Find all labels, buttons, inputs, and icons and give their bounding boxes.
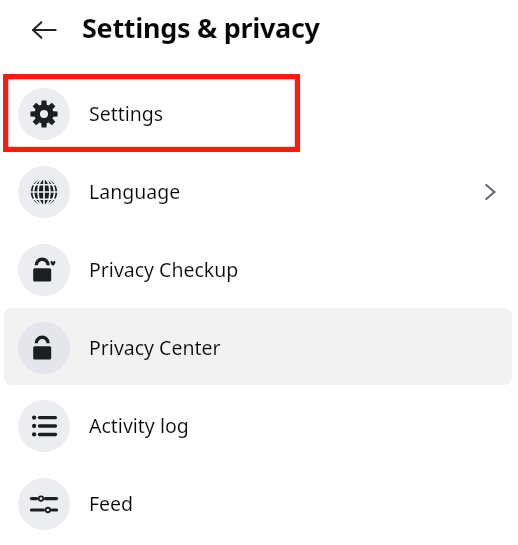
staticText: Language — [89, 178, 181, 205]
button[interactable]: Language — [0, 153, 518, 230]
button[interactable]: Privacy Center — [0, 309, 518, 386]
button[interactable]: Activity log — [0, 387, 518, 464]
staticText: Settings — [89, 100, 164, 127]
button[interactable]: Privacy Checkup — [0, 231, 518, 308]
staticText: Privacy Checkup — [89, 256, 239, 283]
staticText: Activity log — [89, 412, 189, 439]
button[interactable]: Settings — [0, 75, 518, 152]
staticText: Settings & privacy — [82, 9, 320, 46]
staticText: Feed — [89, 490, 134, 517]
staticText: Privacy Center — [89, 334, 221, 361]
button[interactable]: Back — [22, 8, 66, 52]
button[interactable]: Feed — [0, 465, 518, 542]
